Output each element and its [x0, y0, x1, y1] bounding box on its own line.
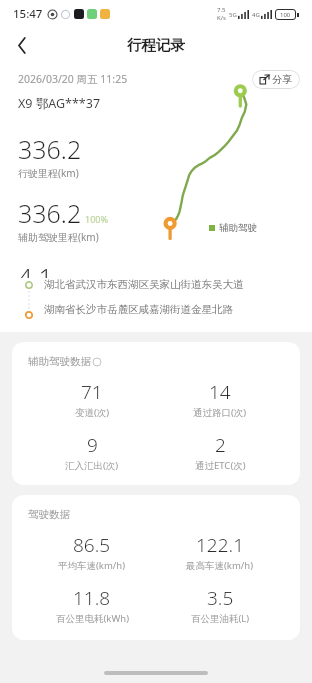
staticText: 336.2 — [18, 132, 82, 166]
staticText: 100% — [85, 213, 108, 225]
staticText: 湖北省武汉市东西湖区吴家山街道东吴大道 — [44, 278, 244, 291]
staticText: 100 — [280, 11, 291, 19]
staticText: 14 — [209, 379, 231, 405]
staticText: 行驶里程(km) — [18, 166, 79, 180]
staticText: 71 — [81, 379, 103, 405]
staticText: 15:47 — [13, 6, 43, 22]
staticText: 平均车速(km/h) — [58, 559, 126, 572]
staticText: 辅助驾驶 — [219, 222, 257, 234]
staticText: 2026/03/20 周五 11:25 — [18, 72, 128, 86]
staticText: 汇入汇出(次) — [65, 459, 119, 472]
staticText: 辅助驾驶里程(km) — [18, 230, 99, 244]
staticText: 通过ETC(次) — [195, 459, 246, 472]
staticText: 分享 — [272, 73, 292, 86]
staticText: 11.8 — [73, 585, 111, 611]
button[interactable]: Back — [5, 28, 39, 62]
staticText: 3.5 — [207, 585, 234, 611]
staticText: K/s — [217, 14, 226, 22]
staticText: 通过路口(次) — [193, 406, 247, 419]
staticText: 驾驶数据 — [28, 508, 70, 521]
staticText: 湖南省长沙市岳麓区咸嘉湖街道金星北路 — [44, 303, 233, 316]
staticText: 86.5 — [73, 532, 111, 558]
staticText: 最高车速(km/h) — [186, 559, 254, 572]
staticText: 2 — [215, 432, 226, 458]
staticText: X9 鄂AG***37 — [18, 95, 101, 112]
staticText: 百公里油耗(L) — [191, 612, 250, 625]
button[interactable]: 分享 — [252, 70, 300, 89]
staticText: 辅助驾驶数据 — [28, 355, 91, 368]
staticText: 百公里电耗(kWh) — [56, 612, 129, 625]
staticText: 5G — [229, 11, 237, 19]
staticText: 122.1 — [196, 532, 245, 558]
staticText: 7.5 — [217, 6, 226, 14]
staticText: 336.2 — [18, 196, 82, 230]
staticText: 4.1 — [18, 260, 53, 278]
staticText: 变道(次) — [75, 406, 110, 419]
staticText: 9 — [87, 432, 98, 458]
staticText: 4G — [252, 11, 260, 19]
staticText: 行程记录 — [127, 36, 185, 54]
